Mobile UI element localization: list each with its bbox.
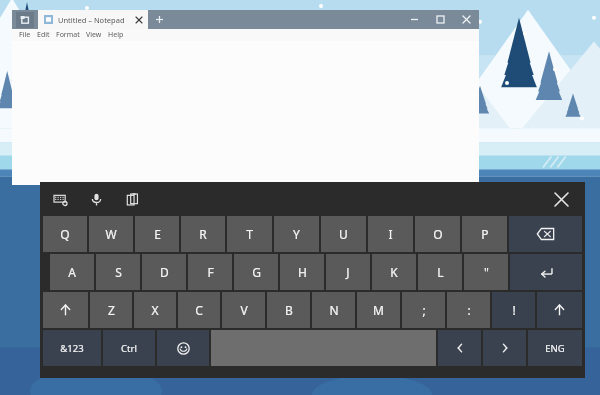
button[interactable]: File <box>16 29 34 41</box>
button[interactable]: N <box>312 292 355 328</box>
staticText: Y <box>293 226 300 242</box>
button[interactable]: ; <box>402 292 445 328</box>
button[interactable]: I <box>368 216 413 252</box>
button[interactable]: C <box>178 292 220 328</box>
button[interactable]: Format <box>53 29 83 41</box>
button[interactable]: Shift <box>537 292 582 328</box>
staticText: E <box>154 226 161 242</box>
button[interactable]: P <box>462 216 507 252</box>
button[interactable]: Edit <box>34 29 53 41</box>
staticText: J <box>346 264 350 280</box>
staticText: C <box>195 302 203 318</box>
button[interactable]: T <box>227 216 272 252</box>
button[interactable]: " <box>464 254 508 290</box>
button[interactable]: ! <box>492 292 535 328</box>
button[interactable]: V <box>222 292 265 328</box>
button[interactable]: Q <box>43 216 87 252</box>
button[interactable]: B <box>267 292 310 328</box>
staticText: S <box>115 264 122 280</box>
staticText: R <box>199 226 207 242</box>
button[interactable]: Minimize <box>401 10 427 29</box>
staticText: Untitled – Notepad <box>58 15 125 25</box>
button[interactable]: L <box>418 254 462 290</box>
button[interactable]: Help <box>105 29 127 41</box>
staticText: L <box>437 264 444 280</box>
button[interactable]: W <box>89 216 133 252</box>
button[interactable]: Shift <box>43 292 88 328</box>
button[interactable]: K <box>372 254 416 290</box>
button[interactable]: Clipboard <box>122 189 142 209</box>
staticText: B <box>285 302 293 318</box>
button[interactable]: New tab <box>148 10 170 29</box>
button[interactable]: Keyboard settings <box>50 189 70 209</box>
staticText: V <box>240 302 248 318</box>
button[interactable]: D <box>142 254 186 290</box>
button[interactable]: M <box>357 292 400 328</box>
staticText: F <box>207 264 214 280</box>
staticText: P <box>481 226 489 242</box>
staticText: O <box>433 226 443 242</box>
button[interactable]: Left arrow <box>438 330 481 366</box>
button[interactable]: U <box>321 216 366 252</box>
button[interactable]: X <box>134 292 176 328</box>
button[interactable]: H <box>280 254 324 290</box>
button[interactable]: View <box>83 29 105 41</box>
button[interactable]: &123 <box>43 330 101 366</box>
button[interactable]: O <box>415 216 460 252</box>
staticText: X <box>151 302 159 318</box>
staticText: N <box>329 302 339 318</box>
button[interactable]: R <box>181 216 225 252</box>
button[interactable]: Close tab <box>132 13 145 26</box>
button[interactable]: Right arrow <box>483 330 526 366</box>
staticText: : <box>467 302 471 318</box>
button[interactable]: Close keyboard <box>551 189 571 209</box>
button[interactable]: Dictate <box>86 189 106 209</box>
staticText: A <box>68 264 76 280</box>
button[interactable]: Close <box>453 10 479 29</box>
staticText: &123 <box>60 342 84 355</box>
staticText: T <box>246 226 253 242</box>
button[interactable]: S <box>96 254 140 290</box>
button[interactable]: G <box>234 254 278 290</box>
staticText: U <box>339 226 348 242</box>
button[interactable]: ENG <box>528 330 582 366</box>
button[interactable]: J <box>326 254 370 290</box>
staticText: M <box>373 302 384 318</box>
staticText: Q <box>60 226 70 242</box>
button[interactable]: Ctrl <box>103 330 155 366</box>
staticText: Help <box>108 30 124 40</box>
staticText: View <box>86 30 102 40</box>
button[interactable]: Untitled – Notepad <box>38 10 148 29</box>
staticText: K <box>390 264 398 280</box>
staticText: G <box>252 264 261 280</box>
staticText: W <box>105 226 117 242</box>
staticText: ; <box>422 302 426 318</box>
button[interactable]: Y <box>274 216 319 252</box>
button[interactable]: : <box>447 292 490 328</box>
staticText: D <box>160 264 169 280</box>
staticText: ENG <box>545 342 565 355</box>
button[interactable]: Maximize <box>427 10 453 29</box>
button[interactable]: Enter <box>510 254 582 290</box>
button[interactable]: F <box>188 254 232 290</box>
button[interactable]: E <box>135 216 179 252</box>
staticText: Z <box>108 302 115 318</box>
staticText: H <box>298 264 307 280</box>
button[interactable]: Emoji <box>157 330 209 366</box>
button[interactable]: Z <box>90 292 132 328</box>
staticText: I <box>388 226 393 242</box>
staticText: ! <box>512 302 516 318</box>
staticText: Ctrl <box>121 342 137 355</box>
staticText: File <box>19 30 31 40</box>
staticText: Format <box>56 30 80 40</box>
button[interactable]: A <box>50 254 94 290</box>
button[interactable]: Tab list <box>16 12 34 28</box>
button[interactable]: Backspace <box>509 216 582 252</box>
staticText: " <box>484 264 489 280</box>
staticText: Edit <box>37 30 50 40</box>
